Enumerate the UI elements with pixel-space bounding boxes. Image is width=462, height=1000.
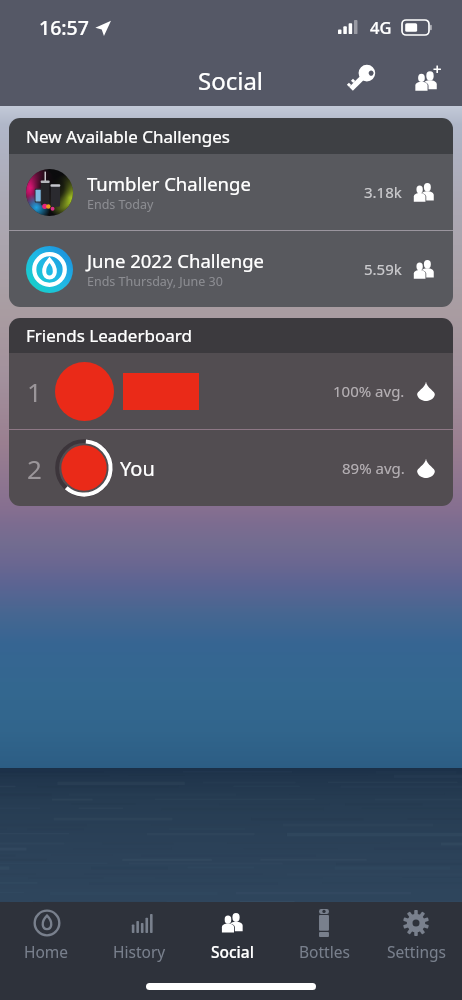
staticText: You <box>120 455 155 482</box>
staticText: New Available Challenges <box>26 125 230 148</box>
staticText: 4G <box>370 16 392 38</box>
button[interactable]: Join with key <box>335 54 387 104</box>
staticText: Friends Leaderboard <box>26 324 192 347</box>
staticText: 5.59k <box>364 259 402 279</box>
button[interactable]: Bottles <box>278 903 370 966</box>
button[interactable]: June 2022 Challenge <box>9 231 453 307</box>
button[interactable]: Settings <box>370 903 462 966</box>
staticText: Social <box>211 941 254 962</box>
staticText: 2 <box>27 451 42 486</box>
button[interactable]: History <box>93 903 186 966</box>
staticText: Home <box>24 941 69 962</box>
staticText: June 2022 Challenge <box>87 248 265 273</box>
staticText: Settings <box>387 941 446 962</box>
staticText: 16:57 <box>39 14 89 41</box>
staticText: 3.18k <box>364 182 402 202</box>
staticText: Ends Today <box>87 196 154 213</box>
button[interactable]: Add friend <box>401 54 453 104</box>
button[interactable]: Tumbler Challenge <box>9 154 453 230</box>
staticText: Tumbler Challenge <box>87 171 251 196</box>
button[interactable]: 2 <box>9 430 453 506</box>
staticText: Ends Thursday, June 30 <box>87 273 223 290</box>
staticText: History <box>113 941 166 962</box>
staticText: 100% avg. <box>333 381 405 401</box>
staticText: Social <box>198 64 264 97</box>
button[interactable]: Social <box>186 903 278 966</box>
button[interactable]: Home <box>0 903 93 966</box>
button[interactable]: 1 <box>9 353 453 429</box>
staticText: Bottles <box>299 941 350 962</box>
staticText: 1 <box>27 374 42 409</box>
staticText: 89% avg. <box>342 458 405 478</box>
